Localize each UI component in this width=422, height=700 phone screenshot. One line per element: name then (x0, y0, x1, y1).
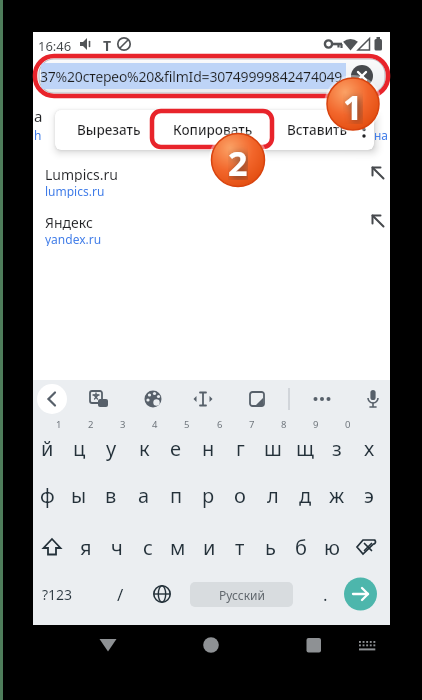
staticText: с (143, 534, 153, 561)
staticText: T (103, 36, 112, 53)
button[interactable] (33, 158, 390, 204)
button[interactable]: п (160, 473, 192, 517)
button[interactable]: к (128, 426, 160, 470)
staticText: 1 (56, 418, 62, 431)
button[interactable]: ж (321, 473, 353, 517)
button[interactable]: Русский (190, 582, 293, 607)
staticText: в (105, 482, 117, 509)
staticText: к (139, 435, 150, 462)
staticText: п (170, 482, 183, 509)
button[interactable] (36, 383, 68, 415)
staticText: ф (40, 482, 55, 509)
staticText: х (364, 435, 375, 462)
staticText: о (234, 482, 246, 509)
staticText: . (323, 583, 328, 606)
button[interactable]: д (289, 473, 321, 517)
button[interactable]: щ (289, 426, 321, 470)
staticText: 0 (345, 418, 351, 431)
button[interactable]: Копировать (160, 116, 266, 144)
staticText: щ (296, 435, 314, 462)
button[interactable]: р (192, 473, 224, 517)
staticText: ю (324, 534, 340, 561)
button[interactable]: э (353, 473, 385, 517)
staticText: 4 (152, 418, 158, 431)
button[interactable] (350, 629, 382, 661)
staticText: м (170, 534, 186, 561)
button[interactable] (352, 60, 374, 82)
staticText: 16:46 (38, 37, 72, 53)
button[interactable]: н (192, 426, 224, 470)
staticText: 3 (120, 418, 126, 431)
staticText: 9 (313, 418, 319, 431)
staticText: 2 (228, 140, 248, 180)
staticText: ь (265, 534, 276, 561)
staticText: 7 (249, 418, 255, 431)
staticText: 1 (343, 84, 363, 124)
button[interactable]: а (128, 473, 160, 517)
button[interactable]: у (95, 426, 127, 470)
staticText: h (34, 127, 42, 141)
button[interactable]: г (224, 426, 256, 470)
button[interactable] (195, 629, 227, 661)
button[interactable]: ц (63, 426, 95, 470)
button[interactable] (92, 629, 124, 661)
button[interactable]: ф (31, 473, 63, 517)
button[interactable]: з (321, 426, 353, 470)
staticText: н (202, 435, 215, 462)
button[interactable]: Вырезать (68, 116, 150, 144)
staticText: и (203, 534, 216, 561)
staticText: т (235, 534, 245, 561)
staticText: yandex.ru (45, 231, 102, 246)
button[interactable]: т (225, 525, 255, 569)
button[interactable]: . (315, 580, 335, 608)
staticText: б (295, 534, 307, 561)
staticText: г (236, 435, 245, 462)
staticText: 37%20стерео%20&filmId=30749999842474049 (40, 67, 343, 86)
staticText: ш (264, 435, 282, 462)
button[interactable]: л (257, 473, 289, 517)
button[interactable]: ш (257, 426, 289, 470)
staticText: на (374, 127, 389, 142)
button[interactable]: о (224, 473, 256, 517)
staticText: Вырезать (77, 121, 141, 139)
button[interactable]: м (163, 525, 193, 569)
button[interactable]: с (133, 525, 163, 569)
staticText: ы (71, 482, 87, 509)
staticText: Яндекс (45, 213, 93, 230)
staticText: 2 (88, 418, 94, 431)
staticText: ж (329, 482, 345, 509)
staticText: Lumpics.ru (45, 165, 118, 182)
button[interactable]: ?123 (34, 580, 80, 608)
button[interactable]: ь (255, 525, 285, 569)
staticText: lumpics.ru (45, 183, 105, 198)
button[interactable]: ч (102, 525, 132, 569)
button[interactable] (33, 32, 390, 380)
staticText: з (332, 435, 342, 462)
staticText: / (117, 583, 124, 606)
button[interactable]: ю (317, 525, 347, 569)
staticText: ч (111, 534, 123, 561)
button[interactable]: я (71, 525, 101, 569)
button[interactable]: е (160, 426, 192, 470)
staticText: Русский (219, 587, 265, 603)
button[interactable]: Вставить (276, 116, 358, 144)
button[interactable]: б (286, 525, 316, 569)
button[interactable]: й (31, 426, 63, 470)
button[interactable] (33, 206, 390, 252)
button[interactable]: х (353, 426, 385, 470)
staticText: е (170, 435, 182, 462)
button[interactable]: и (194, 525, 224, 569)
staticText: ?123 (42, 585, 73, 604)
staticText: э (364, 482, 374, 509)
staticText: д (299, 482, 312, 509)
button[interactable]: ы (63, 473, 95, 517)
button[interactable]: / (106, 578, 134, 610)
button[interactable] (297, 629, 329, 661)
staticText: р (202, 482, 215, 509)
staticText: й (41, 435, 54, 462)
staticText: я (80, 534, 92, 561)
staticText: 5 (184, 418, 190, 431)
staticText: a (34, 106, 43, 122)
button[interactable] (344, 578, 377, 611)
button[interactable]: в (95, 473, 127, 517)
